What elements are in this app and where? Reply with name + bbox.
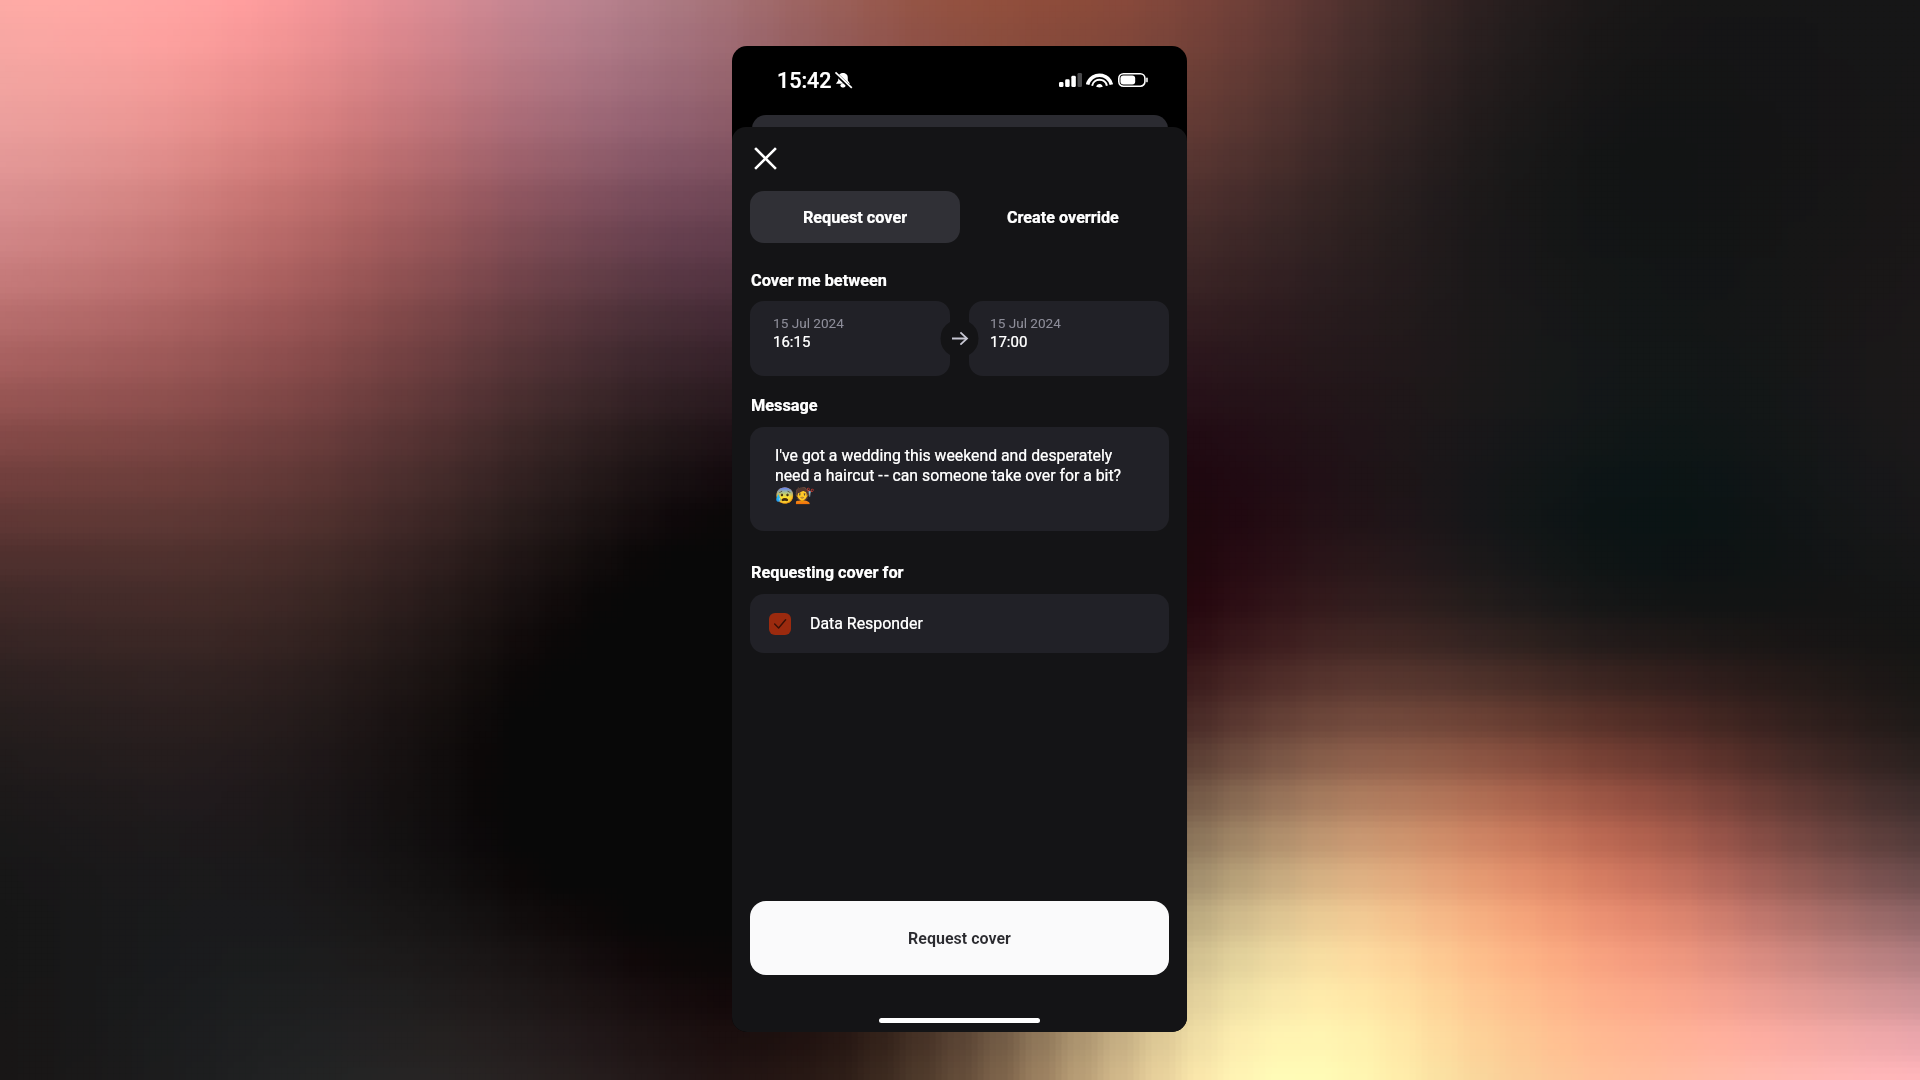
staticText: I've got a wedding this weekend and desp… bbox=[775, 446, 1127, 505]
button[interactable]: I've got a wedding this weekend and desp… bbox=[750, 427, 1169, 531]
button[interactable]: 15 Jul 2024 bbox=[969, 301, 1169, 376]
button[interactable]: Create override bbox=[968, 191, 1168, 243]
staticText: Request cover bbox=[908, 929, 1011, 948]
staticText: Message bbox=[751, 396, 818, 415]
staticText: 15 Jul 2024 bbox=[990, 315, 1061, 331]
staticText: 16:15 bbox=[773, 333, 811, 351]
button[interactable]: Request cover bbox=[750, 901, 1169, 975]
staticText: 15 Jul 2024 bbox=[773, 315, 844, 331]
button[interactable]: Close bbox=[745, 138, 785, 178]
staticText: Request cover bbox=[803, 208, 908, 227]
staticText: 15:42 bbox=[777, 68, 832, 93]
button[interactable]: 15 Jul 2024 bbox=[750, 301, 950, 376]
staticText: Requesting cover for bbox=[751, 563, 904, 582]
staticText: Create override bbox=[1007, 208, 1119, 227]
staticText: Data Responder bbox=[810, 614, 923, 633]
staticText: Cover me between bbox=[751, 271, 887, 290]
staticText: 17:00 bbox=[990, 333, 1028, 351]
button[interactable]: Request cover bbox=[750, 191, 960, 243]
button[interactable]: Data Responder bbox=[750, 594, 1169, 653]
